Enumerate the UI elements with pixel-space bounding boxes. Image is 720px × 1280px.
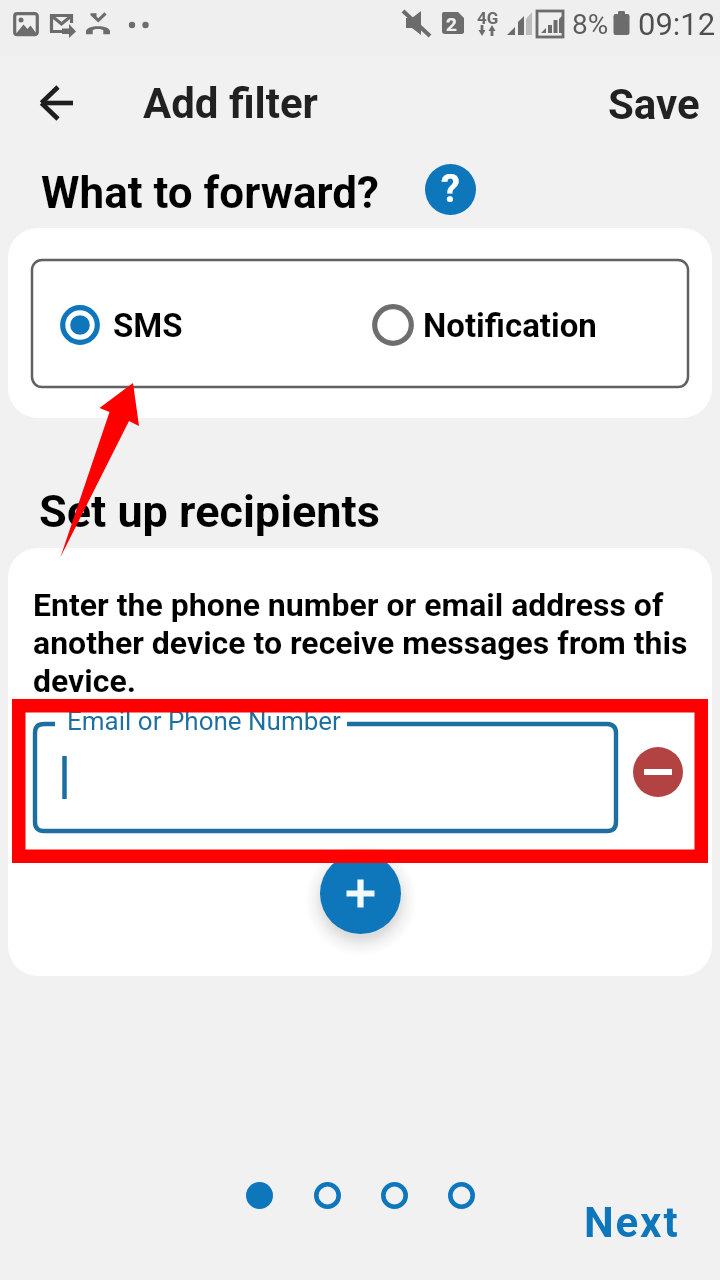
staticText: 2 bbox=[446, 13, 457, 35]
button[interactable]: SMS bbox=[32, 262, 354, 385]
button[interactable]: Email or Phone Number bbox=[35, 724, 616, 831]
staticText: ? bbox=[441, 167, 460, 212]
button[interactable]: Save bbox=[588, 62, 720, 147]
button[interactable]: Remove recipient bbox=[633, 747, 683, 797]
staticText: Save bbox=[608, 80, 700, 129]
staticText: 8% bbox=[572, 8, 609, 41]
staticText: Enter the phone number or email address … bbox=[33, 586, 689, 700]
staticText: 09:12 bbox=[638, 6, 716, 42]
button[interactable]: Page 3 bbox=[381, 1182, 408, 1209]
button[interactable]: Page 4 bbox=[448, 1182, 475, 1209]
button[interactable]: Back bbox=[27, 73, 87, 133]
button[interactable]: Page 1 bbox=[246, 1182, 273, 1209]
button[interactable]: Next bbox=[564, 1182, 700, 1263]
staticText: SMS bbox=[113, 306, 183, 345]
button[interactable]: Help bbox=[425, 164, 476, 215]
staticText: Set up recipients bbox=[39, 485, 380, 538]
button[interactable]: Add recipient bbox=[320, 853, 401, 934]
staticText: What to forward? bbox=[41, 167, 379, 219]
staticText: Email or Phone Number bbox=[67, 706, 341, 736]
staticText: Next bbox=[584, 1198, 680, 1247]
staticText: 4G bbox=[477, 8, 499, 28]
staticText: Add filter bbox=[143, 79, 318, 128]
staticText: Notification bbox=[423, 306, 597, 345]
button[interactable]: Notification bbox=[354, 262, 684, 385]
button[interactable]: Page 2 bbox=[314, 1182, 341, 1209]
